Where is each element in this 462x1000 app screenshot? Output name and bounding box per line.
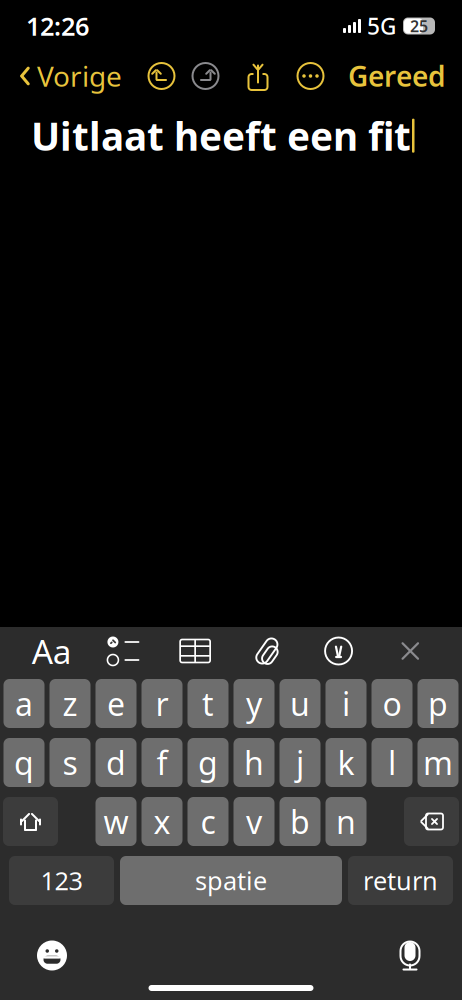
staticText: t [202,682,214,725]
staticText: 12:26 [26,9,89,43]
staticText: d [106,741,126,784]
staticText: l [388,741,396,784]
button[interactable]: b [279,797,320,846]
staticText: o [382,682,401,725]
staticText: w [103,800,128,843]
staticText: 25 [410,15,428,37]
staticText: 123 [40,864,82,897]
staticText: x [153,800,170,843]
button[interactable]: c [187,797,228,846]
button[interactable]: l [371,738,412,787]
button[interactable]: Text format [28,629,76,673]
staticText: c [200,800,215,843]
button[interactable]: m [417,738,458,787]
staticText: Uitlaat heeft een fit [31,110,411,161]
staticText: s [62,741,77,784]
button[interactable]: 123 [9,856,114,905]
staticText: r [155,682,168,725]
staticText: spatie [195,864,267,897]
button[interactable]: z [49,679,90,728]
staticText: h [244,741,264,784]
button[interactable]: o [371,679,412,728]
staticText: a [15,682,33,725]
staticText: j [296,741,304,784]
staticText: k [337,741,354,784]
button[interactable]: f [141,738,182,787]
button[interactable]: Dictate [386,931,434,979]
button[interactable]: x [141,797,182,846]
staticText: 5G [367,11,396,41]
button[interactable]: Markup [315,629,363,673]
staticText: Aa [32,629,72,673]
button[interactable]: p [417,679,458,728]
staticText: return [363,864,438,897]
staticText: n [336,800,356,843]
staticText: f [156,741,167,784]
staticText: g [198,741,218,784]
button[interactable]: return [348,856,453,905]
button[interactable]: u [279,679,320,728]
staticText: e [107,682,125,725]
button[interactable]: j [279,738,320,787]
staticText: b [290,800,310,843]
button[interactable]: Vorige [10,54,130,98]
button[interactable]: Redo [183,54,227,98]
staticText: i [342,682,350,725]
button[interactable]: i [325,679,366,728]
button[interactable]: Attach [243,629,291,673]
staticText: y [246,682,262,725]
button[interactable]: Undo [139,54,183,98]
staticText: u [290,682,310,725]
staticText: z [62,682,77,725]
staticText: v [246,800,262,843]
staticText: Gereed [348,57,446,95]
button[interactable]: Emoji [28,931,76,979]
staticText: Vorige [37,57,122,95]
button[interactable]: s [49,738,90,787]
button[interactable]: a [3,679,44,728]
button[interactable]: t [187,679,228,728]
staticText: p [428,682,448,725]
button[interactable]: Close [386,629,434,673]
button[interactable]: More options [288,54,332,98]
button[interactable]: q [3,738,44,787]
button[interactable]: k [325,738,366,787]
button[interactable]: n [325,797,366,846]
button[interactable]: w [95,797,136,846]
button[interactable]: Table [171,629,219,673]
button[interactable]: Shift [3,797,58,846]
button[interactable]: Gereed [342,54,452,98]
button[interactable]: e [95,679,136,728]
button[interactable]: Checklist [99,629,147,673]
button[interactable]: spatie [120,856,342,905]
button[interactable]: r [141,679,182,728]
staticText: m [423,741,453,784]
button[interactable]: h [233,738,274,787]
button[interactable]: g [187,738,228,787]
button[interactable]: Delete [404,797,459,846]
staticText: q [14,741,34,784]
button[interactable]: y [233,679,274,728]
button[interactable]: d [95,738,136,787]
button[interactable]: v [233,797,274,846]
button[interactable]: Share [237,54,279,98]
